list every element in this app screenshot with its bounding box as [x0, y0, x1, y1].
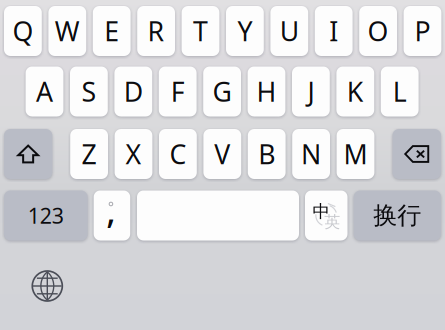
- staticText: K: [347, 74, 364, 109]
- button[interactable]: F: [159, 66, 197, 116]
- button[interactable]: Y: [226, 6, 264, 56]
- staticText: J: [307, 74, 314, 109]
- staticText: L: [393, 74, 407, 109]
- button[interactable]: K: [336, 66, 374, 116]
- staticText: 英: [324, 212, 340, 232]
- staticText: 123: [28, 201, 64, 230]
- staticText: H: [256, 74, 276, 109]
- button[interactable]: V: [203, 129, 241, 179]
- staticText: I: [329, 13, 338, 49]
- staticText: A: [36, 74, 53, 109]
- button[interactable]: 123: [4, 190, 88, 240]
- button[interactable]: W: [48, 6, 86, 56]
- button[interactable]: D: [114, 66, 152, 116]
- button[interactable]: Q: [4, 6, 42, 56]
- button[interactable]: Chinese English toggle: [305, 190, 347, 240]
- button[interactable]: B: [248, 129, 286, 179]
- button[interactable]: J: [292, 66, 330, 116]
- staticText: X: [125, 136, 141, 172]
- button[interactable]: I: [315, 6, 353, 56]
- button[interactable]: Z: [70, 129, 108, 179]
- staticText: Y: [237, 13, 252, 49]
- staticText: E: [104, 13, 119, 49]
- button[interactable]: U: [270, 6, 308, 56]
- button[interactable]: S: [70, 66, 108, 116]
- staticText: S: [81, 74, 96, 109]
- staticText: V: [214, 136, 230, 172]
- button[interactable]: Shift: [4, 129, 52, 179]
- button[interactable]: X: [115, 129, 152, 179]
- staticText: P: [414, 13, 430, 49]
- button[interactable]: Next keyboard: [24, 263, 70, 309]
- staticText: M: [343, 136, 367, 172]
- staticText: C: [169, 136, 186, 172]
- button[interactable]: ,: [94, 190, 130, 240]
- staticText: D: [124, 74, 143, 109]
- button[interactable]: space: [137, 190, 299, 240]
- staticText: G: [213, 74, 232, 109]
- button[interactable]: N: [292, 129, 330, 179]
- staticText: O: [368, 13, 389, 49]
- staticText: Z: [82, 136, 97, 172]
- button[interactable]: 换行: [354, 190, 441, 240]
- staticText: R: [148, 13, 165, 49]
- button[interactable]: R: [137, 6, 175, 56]
- button[interactable]: M: [337, 129, 374, 179]
- staticText: 中: [313, 201, 330, 222]
- staticText: ,: [106, 187, 115, 234]
- button[interactable]: E: [93, 6, 131, 56]
- button[interactable]: L: [381, 66, 419, 116]
- button[interactable]: C: [159, 129, 197, 179]
- staticText: N: [301, 136, 321, 172]
- staticText: T: [193, 13, 208, 49]
- staticText: Q: [12, 13, 33, 49]
- staticText: U: [280, 13, 299, 49]
- button[interactable]: G: [203, 66, 241, 116]
- button[interactable]: Delete: [392, 129, 441, 179]
- staticText: 换行: [373, 201, 421, 230]
- button[interactable]: O: [359, 6, 397, 56]
- staticText: F: [171, 74, 185, 109]
- button[interactable]: A: [26, 66, 63, 116]
- staticText: B: [258, 136, 275, 172]
- button[interactable]: H: [248, 66, 285, 116]
- button[interactable]: T: [182, 6, 219, 56]
- button[interactable]: P: [404, 6, 441, 56]
- staticText: W: [55, 13, 80, 49]
